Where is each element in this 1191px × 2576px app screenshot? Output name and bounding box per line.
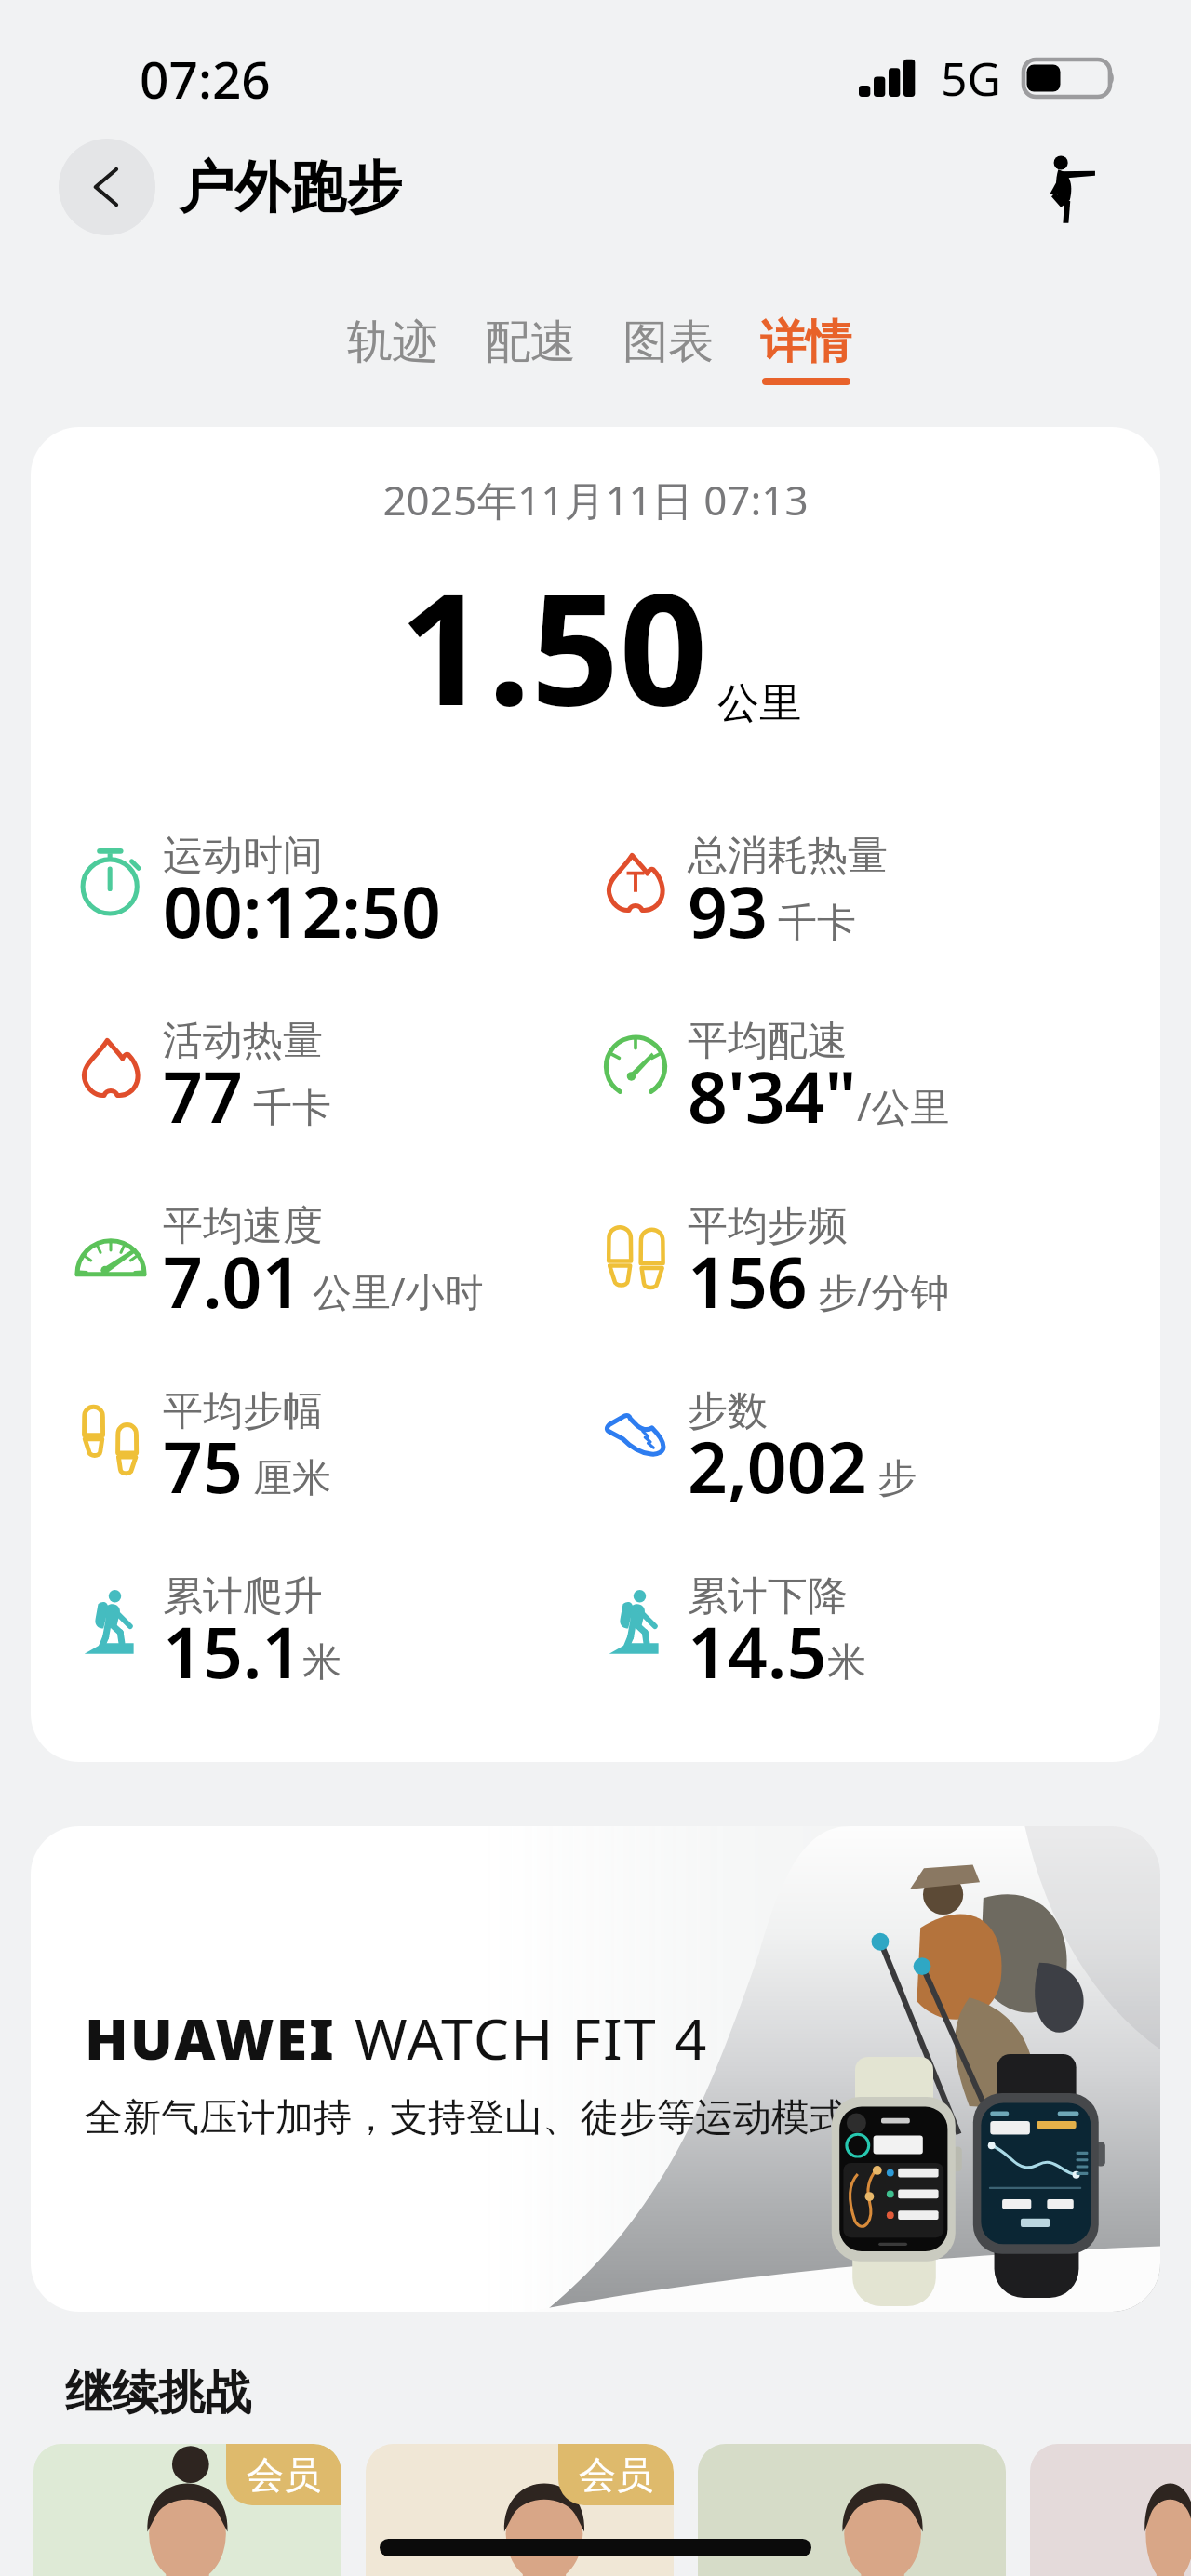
button[interactable]: 会员 <box>366 2444 674 2576</box>
button[interactable]: 平均步幅 <box>73 1381 594 1502</box>
button[interactable]: 详情 <box>737 314 875 385</box>
button[interactable]: 累计爬升 <box>73 1567 594 1688</box>
button[interactable]: 平均步频 <box>597 1196 1118 1317</box>
staticText: 厘米 <box>243 1449 331 1502</box>
staticText: 2,002 <box>688 1419 867 1514</box>
staticText: 平均步幅 <box>163 1386 323 1436</box>
staticText: 继续挑战 <box>65 2364 251 2423</box>
button[interactable]: Exercise type <box>1027 143 1118 234</box>
button[interactable]: 配速 <box>462 314 599 378</box>
staticText: 00:12:50 <box>163 863 441 958</box>
staticText: 8'34" <box>688 1048 857 1143</box>
staticText: 5G <box>941 47 1001 110</box>
staticText: 会员 <box>247 2451 321 2498</box>
button[interactable]: 总消耗热量 <box>597 826 1118 947</box>
staticText: 7.01 <box>163 1234 302 1328</box>
staticText: 米 <box>302 1638 341 1688</box>
staticText: 千卡 <box>768 894 856 947</box>
staticText: 77 <box>163 1048 243 1143</box>
staticText: 2025年11月11日 07:13 <box>31 472 1160 527</box>
button[interactable]: 轨迹 <box>324 314 462 378</box>
staticText: 累计爬升 <box>163 1571 323 1622</box>
staticText: 93 <box>688 863 768 958</box>
staticText: 详情 <box>760 314 851 371</box>
staticText: 千卡 <box>243 1079 331 1132</box>
staticText: 全新气压计加持，支持登山、徒步等运动模式 <box>85 2094 848 2142</box>
staticText: 活动热量 <box>163 1016 323 1066</box>
button[interactable]: 平均速度 <box>73 1196 594 1317</box>
button[interactable]: 运动时间 <box>73 826 594 947</box>
staticText: 会员 <box>579 2451 653 2498</box>
staticText: 平均速度 <box>163 1201 323 1251</box>
staticText: 公里 <box>717 677 801 730</box>
staticText: HUAWEI <box>85 1999 336 2076</box>
staticText: WATCH FIT 4 <box>355 1999 709 2076</box>
staticText: /公里 <box>857 1079 950 1132</box>
staticText: 15.1 <box>163 1604 302 1699</box>
staticText: 75 <box>163 1419 243 1514</box>
button[interactable]: Back <box>59 139 155 235</box>
staticText: 米 <box>827 1638 866 1688</box>
staticText: 14.5 <box>688 1604 827 1699</box>
staticText: 公里/小时 <box>302 1264 484 1317</box>
button[interactable]: 图表 <box>599 314 737 378</box>
staticText: 156 <box>688 1234 808 1328</box>
button[interactable]: 累计下降 <box>597 1567 1118 1688</box>
button[interactable]: HUAWEI <box>31 1826 1160 2312</box>
staticText: 步数 <box>688 1386 768 1436</box>
staticText: 图表 <box>622 314 714 371</box>
button[interactable]: 平均配速 <box>597 1011 1118 1132</box>
staticText: 总消耗热量 <box>688 831 888 881</box>
staticText: 配速 <box>485 314 576 371</box>
button[interactable] <box>698 2444 1006 2576</box>
button[interactable]: 会员 <box>33 2444 341 2576</box>
button[interactable]: 活动热量 <box>73 1011 594 1132</box>
button[interactable] <box>1030 2444 1191 2576</box>
staticText: 平均步频 <box>688 1201 848 1251</box>
staticText: 步/分钟 <box>808 1264 950 1317</box>
staticText: 累计下降 <box>688 1571 848 1622</box>
staticText: 轨迹 <box>347 314 438 371</box>
staticText: 运动时间 <box>163 831 323 881</box>
staticText: 1.50 <box>399 541 708 751</box>
staticText: 07:26 <box>140 44 271 113</box>
staticText: 平均配速 <box>688 1016 848 1066</box>
staticText: 步 <box>867 1449 917 1502</box>
staticText: 户外跑步 <box>179 153 402 223</box>
button[interactable]: 步数 <box>597 1381 1118 1502</box>
